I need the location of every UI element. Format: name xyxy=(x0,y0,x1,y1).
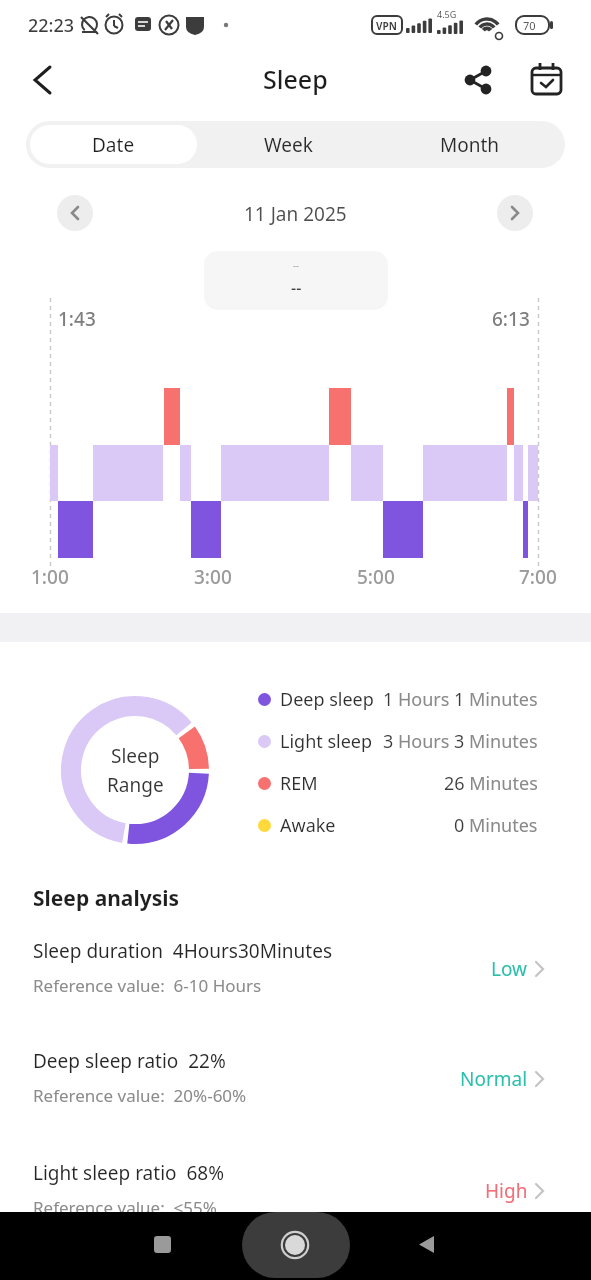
staticText: Normal xyxy=(460,1066,528,1092)
staticText: 1:43 xyxy=(58,306,96,332)
button[interactable]: Month xyxy=(379,125,561,164)
button[interactable] xyxy=(130,1220,190,1272)
staticText: Reference value: 6-10 Hours xyxy=(33,974,262,997)
button[interactable]: Deep sleep ratio 22% xyxy=(18,1048,572,1134)
staticText: Date xyxy=(92,132,135,158)
staticText: 22:23 xyxy=(28,13,75,38)
staticText: Sleep duration 4Hours30Minutes xyxy=(33,938,332,964)
staticText: 3:00 xyxy=(194,564,232,590)
staticText: Light sleep ratio 68% xyxy=(33,1160,224,1186)
staticText: Low xyxy=(491,956,528,982)
staticText: VPN xyxy=(376,19,397,33)
staticText: High xyxy=(485,1178,528,1204)
staticText: Sleep xyxy=(111,743,160,769)
button[interactable] xyxy=(265,1220,325,1272)
staticText: 0 Minutes xyxy=(454,813,538,838)
button[interactable] xyxy=(524,56,572,104)
staticText: Awake xyxy=(280,813,336,838)
staticText: Range xyxy=(107,772,164,798)
staticText: Reference value: <55% xyxy=(33,1196,217,1219)
staticText: 5:00 xyxy=(357,564,395,590)
staticText: 1:00 xyxy=(31,564,69,590)
staticText: -- xyxy=(291,277,302,299)
staticText: 70 xyxy=(523,18,536,33)
button[interactable] xyxy=(57,195,93,231)
button[interactable] xyxy=(20,56,68,104)
button[interactable]: Date xyxy=(30,125,197,164)
button[interactable] xyxy=(397,1220,457,1272)
button[interactable] xyxy=(458,56,502,104)
staticText: Sleep analysis xyxy=(33,884,180,913)
button[interactable]: Sleep duration 4Hours30Minutes xyxy=(18,938,572,1024)
staticText: 4.5G xyxy=(437,8,457,20)
staticText: Deep sleep ratio 22% xyxy=(33,1048,226,1074)
button[interactable]: Week xyxy=(197,125,379,164)
staticText: Deep sleep xyxy=(280,687,374,712)
button[interactable]: Light sleep ratio 68% xyxy=(18,1160,572,1246)
staticText: Light sleep xyxy=(280,729,373,754)
staticText: Sleep xyxy=(263,62,328,96)
staticText: 6:13 xyxy=(492,306,530,332)
staticText: 7:00 xyxy=(519,564,557,590)
staticText: 1 Hours 1 Minutes xyxy=(383,687,538,712)
staticText: -- xyxy=(293,259,299,271)
staticText: 3 Hours 3 Minutes xyxy=(383,729,538,754)
staticText: Week xyxy=(264,132,313,158)
staticText: Reference value: 20%-60% xyxy=(33,1084,247,1107)
button[interactable] xyxy=(497,195,533,231)
staticText: REM xyxy=(280,771,318,796)
staticText: Month xyxy=(440,132,500,158)
staticText: 26 Minutes xyxy=(444,771,538,796)
staticText: 11 Jan 2025 xyxy=(244,201,347,227)
